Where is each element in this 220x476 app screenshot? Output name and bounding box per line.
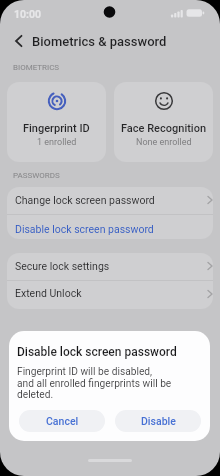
staticText: Face Recognition — [121, 122, 207, 135]
staticText: Disable lock screen password — [15, 223, 154, 235]
button[interactable]: Secure lock settings — [7, 253, 213, 280]
button[interactable]: Cancel — [19, 410, 105, 432]
staticText: Disable lock screen password — [17, 345, 177, 359]
staticText: Change lock screen password — [15, 194, 155, 206]
staticText: Fingerprint ID — [23, 122, 90, 135]
staticText: Biometrics & password — [32, 34, 167, 49]
staticText: 10:00 — [14, 8, 42, 20]
staticText: Disable — [141, 415, 176, 427]
staticText: BIOMETRICS — [13, 63, 60, 72]
staticText: Extend Unlock — [15, 287, 82, 299]
button[interactable]: Change lock screen password — [7, 187, 213, 214]
staticText: 1 enrolled — [37, 137, 77, 148]
staticText: PASSWORDS — [13, 171, 60, 180]
staticText: Fingerprint ID will be disabled, and all… — [17, 366, 172, 401]
button[interactable]: Extend Unlock — [7, 281, 213, 309]
staticText: None enrolled — [136, 137, 192, 148]
button[interactable]: Disable — [115, 410, 201, 432]
staticText: Cancel — [46, 415, 79, 427]
button[interactable]: Fingerprint ID — [7, 82, 106, 162]
staticText: Secure lock settings — [15, 260, 110, 272]
button[interactable]: Face Recognition — [114, 82, 213, 162]
button[interactable]: Disable lock screen password — [7, 215, 213, 239]
